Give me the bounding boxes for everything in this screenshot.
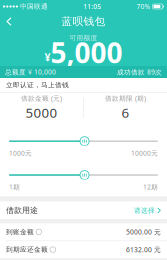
staticText: 借款金额 (元) — [21, 94, 62, 103]
staticText: 成功借款 89次 — [117, 68, 162, 76]
staticText: 10000元 — [131, 149, 158, 158]
button[interactable]: 返回 — [0, 14, 18, 29]
staticText: 可用额度 — [69, 34, 97, 42]
staticText: 6 — [121, 104, 129, 121]
staticText: 70% — [137, 2, 151, 11]
staticText: 5000 — [26, 104, 58, 121]
staticText: 总额度 ¥ 10,000 — [5, 68, 56, 76]
staticText: 11:05 — [83, 2, 101, 11]
staticText: 中国联通 — [20, 2, 48, 11]
staticText: 立即认证，马上借钱 — [6, 81, 69, 89]
button[interactable]: 立即认证，马上借钱 — [0, 78, 167, 92]
staticText: 借款用途 — [6, 205, 38, 215]
staticText: 12期 — [143, 183, 158, 191]
staticText: 6132.00 元 — [126, 245, 161, 254]
staticText: 蓝呗钱包 — [61, 15, 105, 28]
button[interactable]: 借款用途 — [0, 201, 167, 219]
staticText: 5,000 — [50, 34, 122, 71]
staticText: 到账金额 — [6, 228, 34, 236]
staticText: 借款期限 (期) — [105, 94, 146, 103]
staticText: 1000元 — [9, 149, 32, 158]
staticText: 5000.00 元 — [126, 227, 161, 236]
staticText: 请选择 — [134, 206, 155, 214]
staticText: 1期 — [9, 183, 20, 191]
staticText: ¥ — [44, 50, 50, 64]
staticText: 到期应还金额 — [6, 245, 48, 254]
